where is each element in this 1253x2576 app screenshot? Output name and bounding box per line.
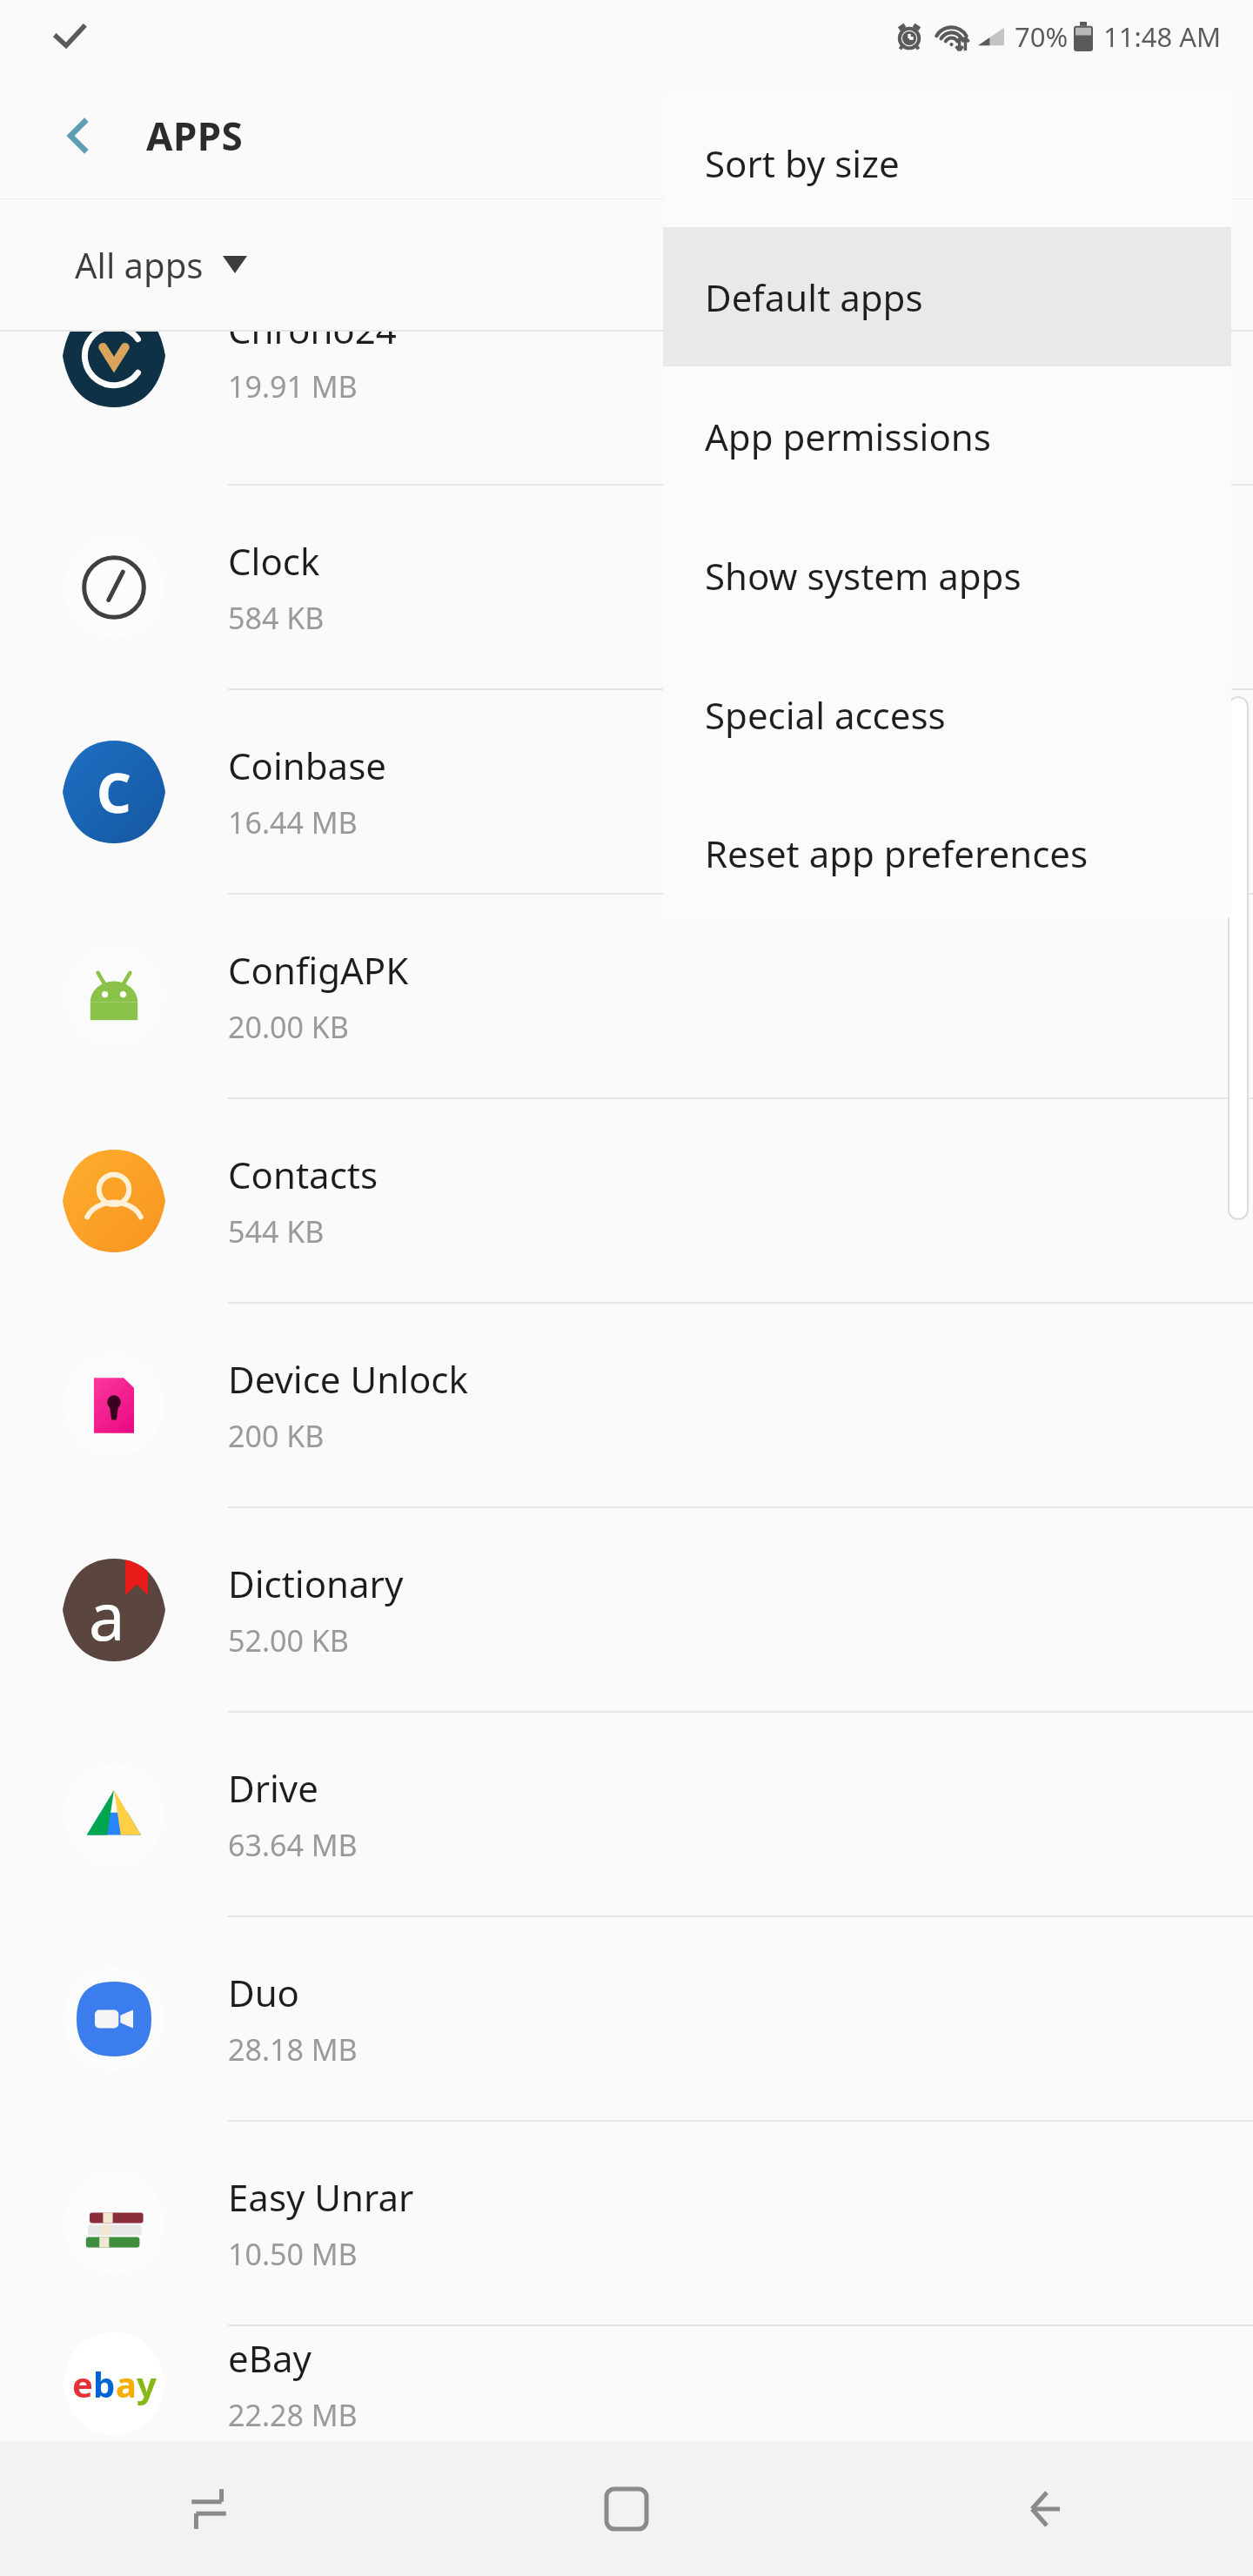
- staticText: Dictionary: [228, 1559, 404, 1608]
- staticText: ConfigAPK: [228, 945, 409, 995]
- staticText: e: [72, 2360, 93, 2407]
- button[interactable]: All apps: [52, 222, 270, 307]
- staticText: 584 KB: [228, 598, 325, 638]
- button[interactable]: e: [0, 2326, 1253, 2441]
- staticText: a: [89, 1572, 125, 1660]
- staticText: Default apps: [705, 272, 923, 322]
- button[interactable]: Default apps: [663, 227, 1231, 366]
- staticText: 200 KB: [228, 1416, 325, 1456]
- button[interactable]: App permissions: [663, 366, 1231, 506]
- button[interactable]: ConfigAPK: [0, 895, 1253, 1097]
- button[interactable]: Drive: [0, 1713, 1253, 1915]
- staticText: APPS: [146, 110, 244, 162]
- staticText: 544 KB: [228, 1211, 325, 1251]
- staticText: Duo: [228, 1968, 300, 2017]
- staticText: Coinbase: [228, 741, 386, 790]
- button[interactable]: Easy Unrar: [0, 2122, 1253, 2324]
- staticText: Clock: [228, 536, 320, 586]
- button[interactable]: a: [0, 1508, 1253, 1711]
- staticText: 16.44 MB: [228, 802, 358, 842]
- staticText: 19.91 MB: [228, 366, 358, 406]
- button[interactable]: Duo: [0, 1917, 1253, 2120]
- staticText: 10.50 MB: [228, 2234, 358, 2274]
- button[interactable]: Contacts: [0, 1099, 1253, 1302]
- button[interactable]: Chrono24: [0, 332, 1253, 432]
- button[interactable]: Reset app preferences: [663, 784, 1231, 922]
- staticText: b: [93, 2360, 116, 2407]
- staticText: 28.18 MB: [228, 2029, 358, 2070]
- button[interactable]: Recent apps: [0, 2441, 418, 2576]
- staticText: Contacts: [228, 1150, 379, 1199]
- staticText: Show system apps: [705, 551, 1022, 600]
- button[interactable]: Special access: [663, 645, 1231, 784]
- button[interactable]: Back: [835, 2441, 1253, 2576]
- staticText: All apps: [75, 241, 204, 288]
- staticText: Reset app preferences: [705, 828, 1089, 878]
- staticText: C: [97, 755, 131, 828]
- staticText: 63.64 MB: [228, 1825, 358, 1865]
- staticText: 22.28 MB: [228, 2395, 358, 2435]
- button[interactable]: Clock: [0, 486, 1253, 688]
- staticText: a: [116, 2360, 137, 2407]
- staticText: App permissions: [705, 412, 991, 461]
- staticText: Device Unlock: [228, 1354, 468, 1404]
- staticText: Chrono24: [228, 332, 397, 354]
- button[interactable]: Sort by size: [663, 99, 1231, 227]
- staticText: eBay: [228, 2333, 312, 2383]
- button[interactable]: Home: [418, 2441, 835, 2576]
- button[interactable]: C: [0, 690, 1253, 893]
- button[interactable]: Device Unlock: [0, 1304, 1253, 1506]
- button[interactable]: Show system apps: [663, 506, 1231, 645]
- staticText: Special access: [705, 690, 946, 740]
- staticText: Drive: [228, 1763, 318, 1813]
- button[interactable]: Navigate up: [38, 94, 122, 178]
- staticText: y: [137, 2360, 157, 2407]
- staticText: 70%: [1015, 18, 1069, 55]
- staticText: 20.00 KB: [228, 1007, 349, 1047]
- staticText: 11:48 AM: [1103, 18, 1222, 55]
- staticText: Easy Unrar: [228, 2172, 414, 2222]
- staticText: 52.00 KB: [228, 1620, 349, 1660]
- staticText: Sort by size: [705, 138, 900, 188]
